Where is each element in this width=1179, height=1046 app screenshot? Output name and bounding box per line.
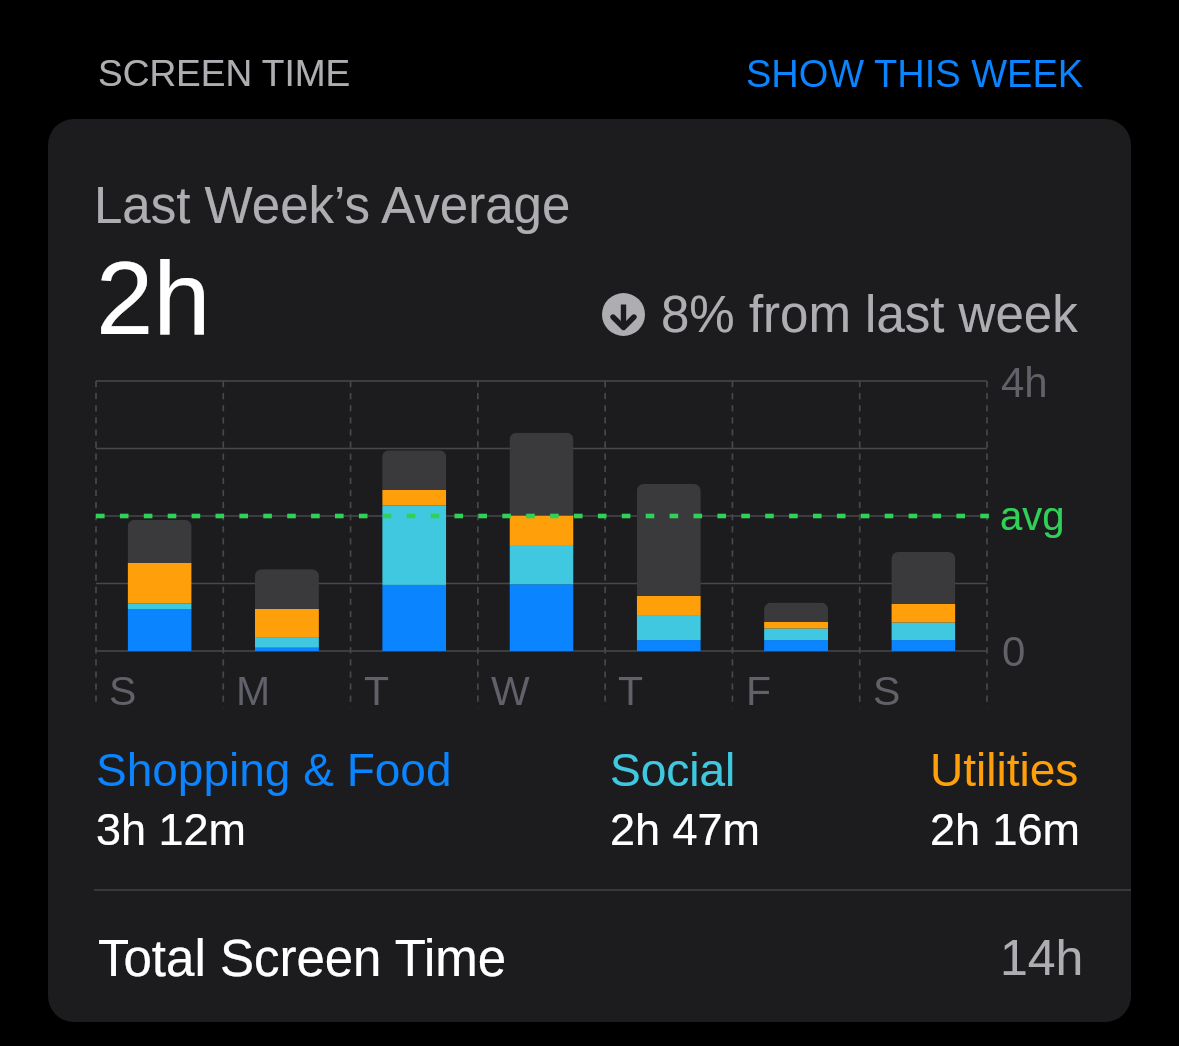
staticText: W	[491, 668, 530, 714]
staticText: 14h	[1000, 930, 1084, 986]
staticText: Last Week’s Average	[94, 177, 571, 234]
staticText: Social	[610, 744, 736, 795]
staticText: F	[746, 668, 772, 714]
button[interactable]: Shopping & Food	[96, 744, 452, 854]
button[interactable]: Social	[610, 744, 761, 854]
staticText: 4h	[1001, 359, 1048, 406]
staticText: 2h 16m	[930, 804, 1081, 854]
staticText: S	[109, 668, 137, 714]
staticText: avg	[1000, 494, 1065, 539]
button[interactable]: SHOW THIS WEEK	[708, 37, 1122, 111]
button[interactable]: Utilities	[930, 744, 1081, 854]
staticText: T	[618, 668, 644, 714]
staticText: S	[873, 668, 901, 714]
button[interactable]: Total Screen Time	[48, 893, 1131, 1023]
staticText: 2h	[96, 241, 211, 356]
staticText: Total Screen Time	[98, 930, 507, 987]
staticText: 2h 47m	[610, 804, 761, 854]
button[interactable]: SCREEN TIME	[60, 37, 389, 110]
staticText: 8% from last week	[661, 286, 1078, 343]
staticText: 0	[1002, 628, 1026, 675]
staticText: SHOW THIS WEEK	[746, 53, 1084, 95]
staticText: T	[364, 668, 390, 714]
staticText: Shopping & Food	[96, 744, 452, 795]
staticText: M	[236, 668, 271, 714]
other: Down 8 percent from last week	[602, 293, 645, 336]
staticText: Utilities	[930, 744, 1079, 795]
staticText: SCREEN TIME	[98, 53, 351, 94]
staticText: 3h 12m	[96, 804, 247, 854]
